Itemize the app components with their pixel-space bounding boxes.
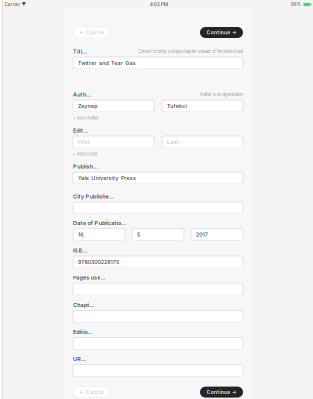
- staticText: Editor:: [73, 127, 90, 134]
- staticText: ← Cancel: [79, 29, 104, 35]
- staticText: + Add Editor: [73, 151, 98, 156]
- button[interactable]: Continue →: [200, 387, 243, 398]
- staticText: Continue →: [206, 29, 236, 35]
- staticText: Convert to citing a single chapter inste…: [138, 49, 243, 54]
- staticText: ISBN:: [73, 247, 89, 254]
- staticText: Carrier: [4, 2, 20, 7]
- button[interactable]: Convert to citing a single chapter inste…: [138, 49, 243, 54]
- button[interactable]: Continue →: [200, 27, 243, 38]
- staticText: Author is an organization: [200, 92, 243, 97]
- staticText: Chapter:: [73, 302, 97, 308]
- staticText: Last: [167, 139, 178, 145]
- staticText: 2017: [196, 231, 207, 238]
- staticText: 16: [78, 231, 83, 238]
- staticText: 96%: [291, 2, 301, 7]
- button[interactable]: + Add Author: [73, 115, 99, 121]
- staticText: URL:: [73, 356, 87, 362]
- button[interactable]: ← Cancel: [73, 27, 110, 38]
- staticText: Publisher:: [73, 163, 100, 170]
- staticText: Continue →: [206, 389, 236, 395]
- staticText: Twitter and Tear Gas: [78, 60, 135, 66]
- button[interactable]: + Add Editor: [73, 151, 98, 157]
- staticText: ← Cancel: [79, 389, 104, 395]
- staticText: First: [78, 139, 90, 145]
- staticText: + Add Author: [73, 115, 99, 120]
- staticText: Pages used:: [73, 274, 106, 281]
- staticText: 5: [137, 231, 142, 238]
- button[interactable]: ← Cancel: [73, 387, 110, 398]
- staticText: 9780300228175: [78, 259, 119, 265]
- staticText: Yale University Press: [78, 175, 136, 181]
- button[interactable]: Author is an organization: [200, 92, 243, 97]
- staticText: City Published:: [73, 193, 114, 200]
- staticText: 4:03 PM: [150, 2, 168, 7]
- staticText: Edition:: [73, 329, 93, 335]
- staticText: Date of Publication:: [73, 220, 126, 226]
- staticText: ▼: [21, 2, 26, 7]
- staticText: Author:: [73, 91, 93, 98]
- staticText: Zeynep: [78, 103, 97, 109]
- staticText: Tufekci: [167, 103, 186, 109]
- staticText: Title:: [73, 48, 87, 55]
